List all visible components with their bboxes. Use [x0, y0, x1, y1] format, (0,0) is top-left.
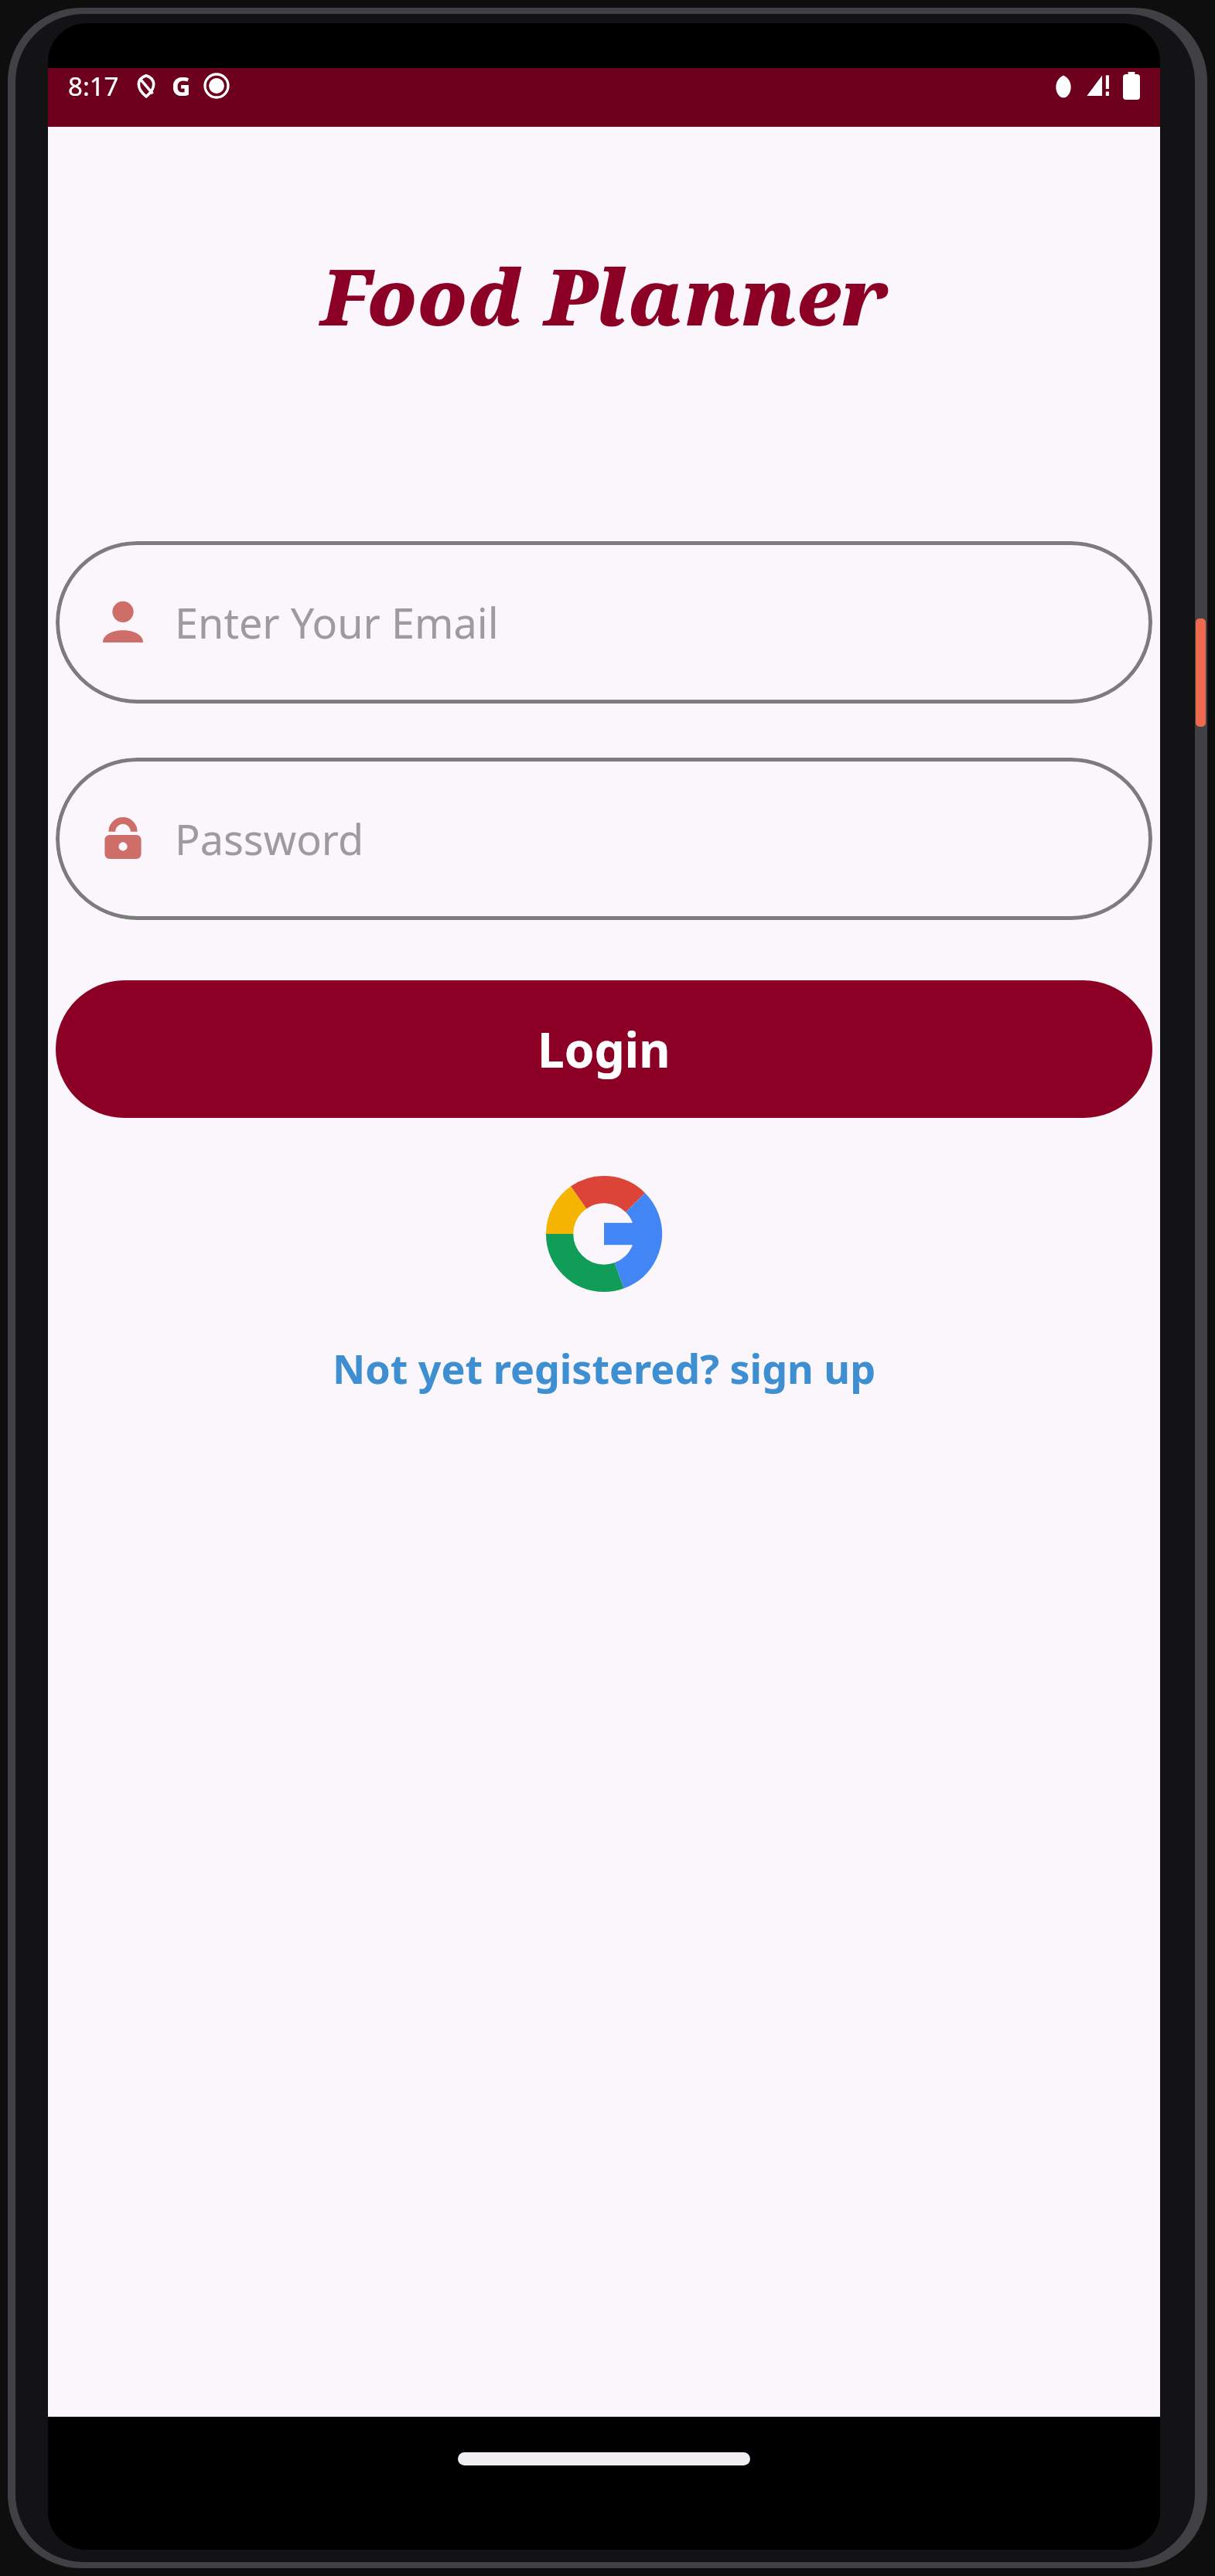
- button[interactable]: Not yet registered? sign up: [48, 1341, 1160, 1395]
- staticText: 8:17: [68, 69, 119, 104]
- staticText: Not yet registered? sign up: [333, 1341, 876, 1395]
- button[interactable]: Enter Your Email: [56, 541, 1152, 704]
- staticText: Login: [538, 1017, 671, 1082]
- button[interactable]: Login: [56, 980, 1152, 1118]
- staticText: Food Planner: [48, 243, 1160, 348]
- button[interactable]: Sign in with Google: [534, 1164, 674, 1303]
- button[interactable]: Password: [56, 758, 1152, 920]
- staticText: Enter Your Email: [175, 594, 499, 651]
- staticText: G: [172, 68, 191, 104]
- staticText: Password: [175, 810, 364, 867]
